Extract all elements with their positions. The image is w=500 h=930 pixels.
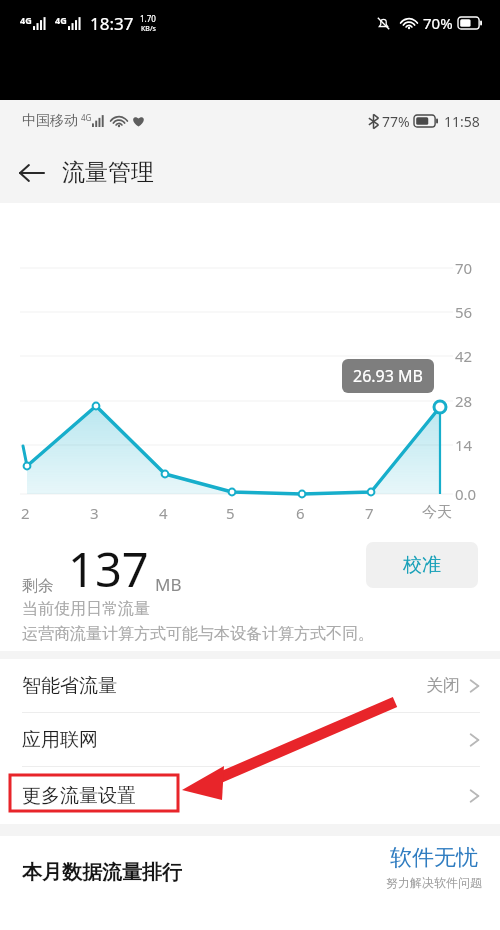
staticText: 今天 — [422, 503, 452, 522]
staticText: 中国移动 — [22, 112, 78, 130]
button[interactable]: 应用联网 — [0, 713, 500, 767]
staticText: 18:37 — [90, 12, 134, 35]
staticText: 努力解决软件问题 — [386, 875, 482, 890]
staticText: 70 — [455, 258, 473, 278]
staticText: 5 — [226, 503, 235, 523]
staticText: 关闭 — [426, 675, 460, 696]
staticText: 更多流量设置 — [22, 784, 136, 808]
staticText: 流量管理 — [62, 158, 154, 187]
staticText: 校准 — [403, 553, 441, 577]
staticText: 智能省流量 — [22, 674, 117, 698]
staticText: 14 — [455, 435, 473, 455]
staticText: 剩余 — [22, 576, 54, 596]
staticText: 4 — [159, 503, 168, 523]
staticText: 4G — [20, 14, 32, 26]
staticText: 77% — [382, 112, 410, 131]
staticText: 2 — [21, 503, 30, 523]
staticText: 0.0 — [455, 484, 477, 504]
staticText: MB — [155, 573, 182, 596]
staticText: 6 — [296, 503, 305, 523]
staticText: 当前使用日常流量 — [22, 599, 150, 619]
staticText: 运营商流量计算方式可能与本设备计算方式不同。 — [22, 624, 374, 644]
staticText: 4G — [81, 112, 92, 123]
staticText: 3 — [90, 503, 99, 523]
button[interactable]: 校准 — [366, 542, 478, 588]
staticText: 7 — [365, 503, 374, 523]
staticText: 11:58 — [444, 112, 480, 131]
staticText: 4G — [55, 14, 67, 26]
button[interactable]: 智能省流量 — [0, 659, 500, 713]
button[interactable]: 更多流量设置 — [0, 767, 500, 824]
staticText: 70% — [423, 13, 453, 33]
staticText: 28 — [455, 391, 473, 411]
staticText: 本月数据流量排行 — [22, 860, 182, 885]
staticText: 42 — [455, 346, 473, 366]
staticText: 26.93 MB — [353, 365, 423, 387]
staticText: 软件无忧 — [390, 844, 478, 872]
button[interactable]: Back — [0, 142, 62, 203]
staticText: 137 — [68, 537, 149, 601]
staticText: 应用联网 — [22, 728, 98, 752]
staticText: 56 — [455, 302, 473, 322]
staticText: 1.70 — [140, 13, 156, 24]
staticText: KB/s — [141, 24, 156, 34]
